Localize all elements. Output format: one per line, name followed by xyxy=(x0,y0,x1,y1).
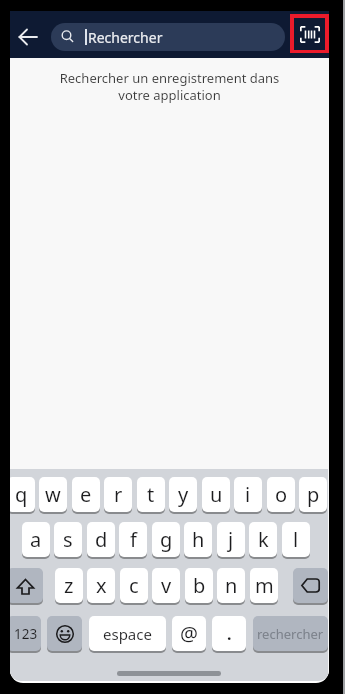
button[interactable]: e xyxy=(72,477,100,512)
button[interactable]: f xyxy=(119,522,147,557)
staticText: t xyxy=(147,481,155,508)
button[interactable]: s xyxy=(54,522,82,557)
staticText: b xyxy=(193,572,206,599)
button[interactable]: k xyxy=(249,522,277,557)
button[interactable]: @ xyxy=(172,616,206,651)
button[interactable]: b xyxy=(185,568,213,603)
button[interactable]: o xyxy=(267,477,295,512)
button[interactable]: a xyxy=(22,522,50,557)
staticText: e xyxy=(80,481,92,508)
staticText: y xyxy=(178,481,189,508)
button[interactable]: 123 xyxy=(10,616,41,651)
staticText: Rechercher xyxy=(88,28,163,47)
button[interactable]: w xyxy=(39,477,67,512)
staticText: m xyxy=(255,572,274,599)
staticText: c xyxy=(129,572,139,599)
button[interactable]: n xyxy=(217,568,245,603)
staticText: rechercher xyxy=(257,625,324,643)
staticText: q xyxy=(15,481,28,508)
button[interactable]: c xyxy=(120,568,148,603)
staticText: v xyxy=(161,572,172,599)
staticText: f xyxy=(130,526,137,553)
button[interactable]: y xyxy=(169,477,197,512)
button[interactable]: j xyxy=(217,522,245,557)
staticText: x xyxy=(96,572,107,599)
button[interactable]: x xyxy=(87,568,115,603)
staticText: r xyxy=(114,481,123,508)
button[interactable]: l xyxy=(282,522,310,557)
button[interactable]: t xyxy=(137,477,165,512)
staticText: p xyxy=(307,481,320,508)
staticText: Rechercher un enregistrement dans xyxy=(10,69,329,87)
staticText: w xyxy=(45,481,61,508)
button[interactable]: g xyxy=(152,522,180,557)
button[interactable]: . xyxy=(212,616,246,651)
staticText: h xyxy=(192,526,205,553)
button[interactable]: p xyxy=(299,477,327,512)
staticText: 123 xyxy=(14,625,38,643)
button[interactable] xyxy=(14,23,42,51)
staticText: n xyxy=(225,572,238,599)
staticText: s xyxy=(63,526,73,553)
staticText: votre application xyxy=(10,86,329,104)
button[interactable] xyxy=(290,14,329,53)
button[interactable] xyxy=(10,568,43,603)
button[interactable]: q xyxy=(10,477,35,512)
button[interactable]: espace xyxy=(89,616,166,651)
staticText: d xyxy=(95,526,108,553)
button[interactable]: m xyxy=(250,568,278,603)
staticText: z xyxy=(64,572,74,599)
button[interactable]: v xyxy=(152,568,180,603)
staticText: o xyxy=(275,481,288,508)
staticText: i xyxy=(245,481,251,508)
button[interactable] xyxy=(293,568,328,603)
button[interactable]: rechercher xyxy=(253,616,328,651)
staticText: @ xyxy=(180,620,198,647)
staticText: j xyxy=(228,526,234,553)
staticText: l xyxy=(293,526,299,553)
staticText: a xyxy=(30,526,42,553)
button[interactable] xyxy=(47,616,82,651)
button[interactable]: r xyxy=(104,477,132,512)
staticText: k xyxy=(258,526,269,553)
button[interactable]: z xyxy=(55,568,83,603)
staticText: g xyxy=(160,526,173,553)
staticText: . xyxy=(227,623,232,645)
staticText: espace xyxy=(103,624,152,644)
button[interactable]: i xyxy=(234,477,262,512)
button[interactable]: Rechercher xyxy=(51,23,285,51)
button[interactable]: u xyxy=(202,477,230,512)
button[interactable]: d xyxy=(87,522,115,557)
staticText: u xyxy=(210,481,223,508)
button[interactable]: h xyxy=(184,522,212,557)
